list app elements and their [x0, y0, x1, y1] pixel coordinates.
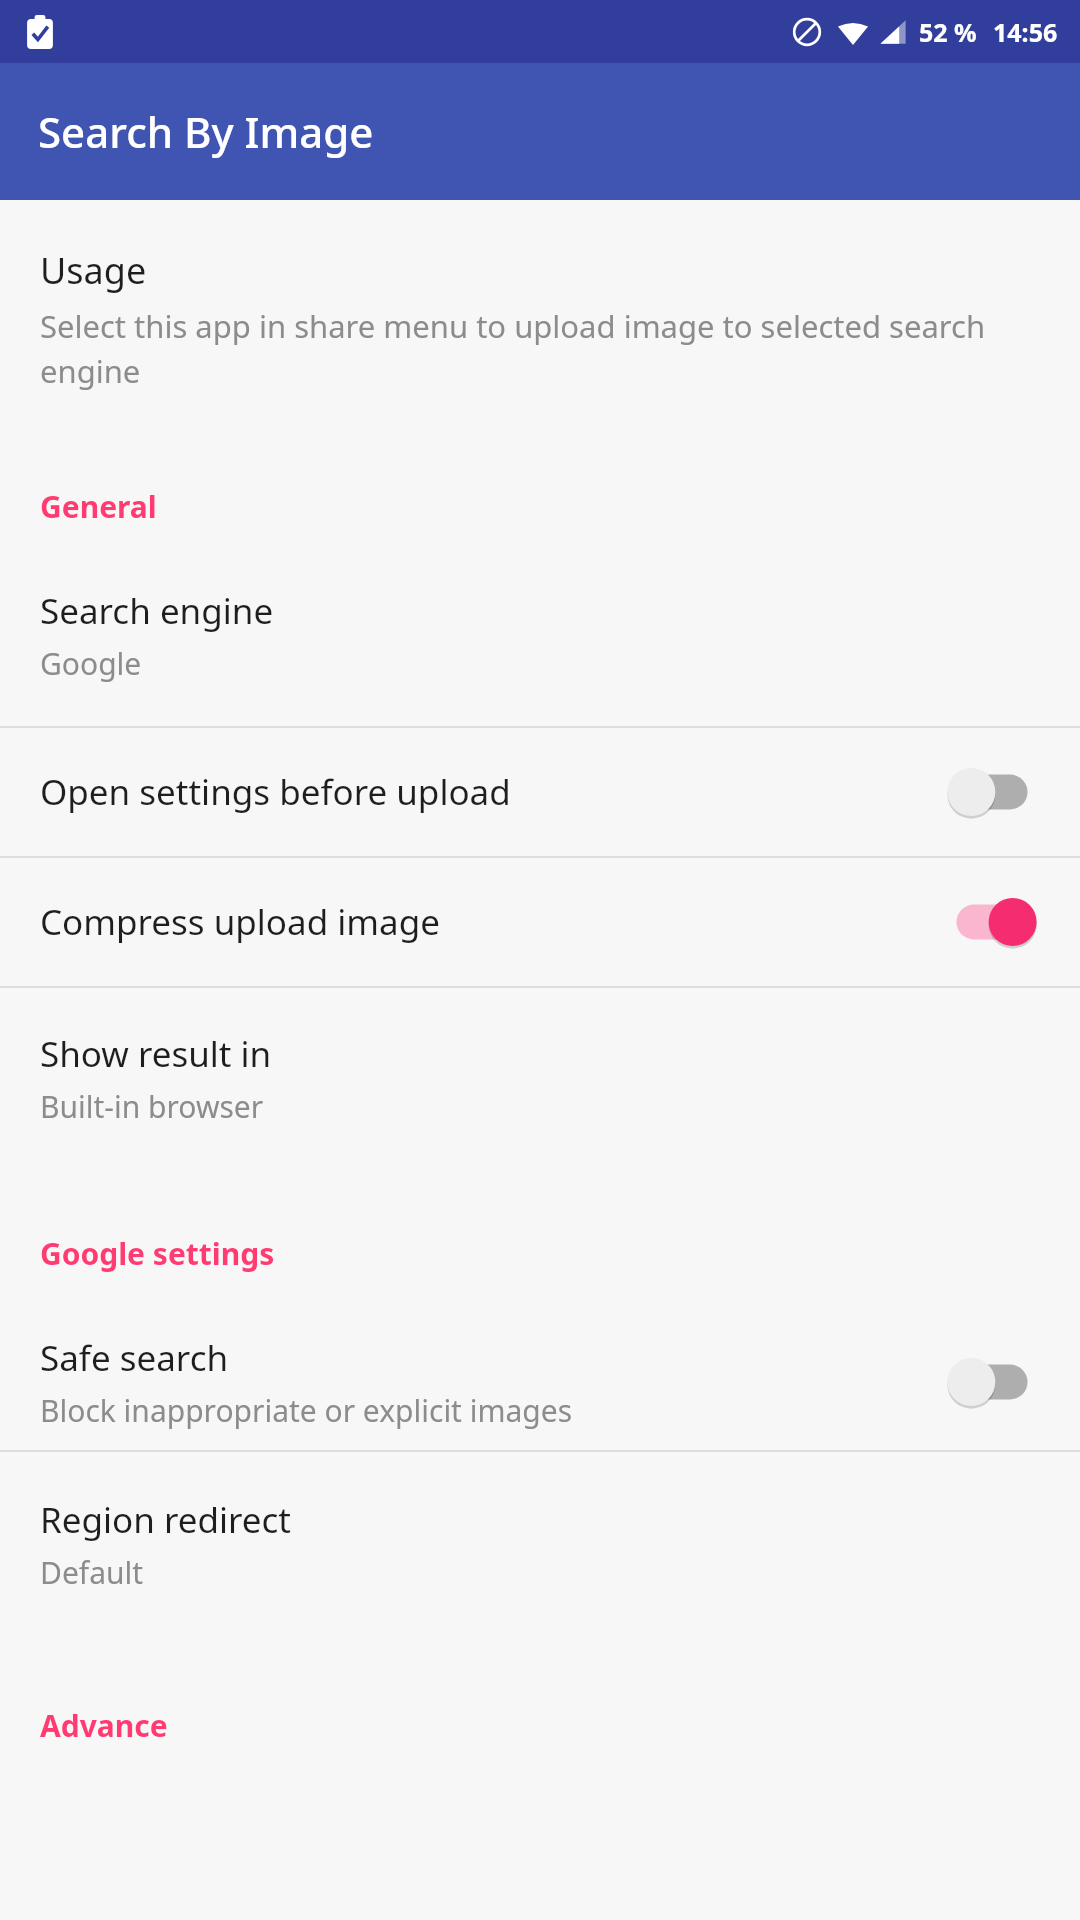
staticText: 52 %: [919, 15, 977, 49]
staticText: General: [40, 486, 1080, 527]
button[interactable]: Region redirect: [0, 1452, 1080, 1633]
staticText: Default: [40, 1552, 144, 1593]
staticText: Compress upload image: [40, 898, 440, 946]
staticText: Search By Image: [38, 103, 374, 160]
staticText: Advance: [40, 1705, 1080, 1746]
staticText: Search engine: [40, 587, 274, 635]
staticText: Built-in browser: [40, 1086, 264, 1127]
button[interactable]: Off: [944, 762, 1040, 822]
staticText: Open settings before upload: [40, 768, 511, 816]
staticText: Usage: [40, 246, 147, 295]
staticText: Google: [40, 643, 142, 684]
staticText: Google settings: [40, 1233, 1080, 1274]
staticText: Select this app in share menu to upload …: [40, 305, 1020, 392]
staticText: 14:56: [993, 15, 1058, 49]
button[interactable]: Open settings before upload: [0, 728, 1080, 856]
staticText: Region redirect: [40, 1496, 291, 1544]
staticText: Block inappropriate or explicit images: [40, 1390, 573, 1431]
button[interactable]: Safe search: [0, 1314, 1080, 1450]
staticText: Show result in: [40, 1030, 272, 1078]
button[interactable]: Show result in: [0, 988, 1080, 1167]
button[interactable]: Compress upload image: [0, 858, 1080, 986]
button[interactable]: On: [944, 892, 1040, 952]
button[interactable]: Usage: [0, 236, 1080, 402]
button[interactable]: Off: [944, 1352, 1040, 1412]
staticText: Safe search: [40, 1334, 229, 1382]
button[interactable]: Search engine: [0, 571, 1080, 726]
